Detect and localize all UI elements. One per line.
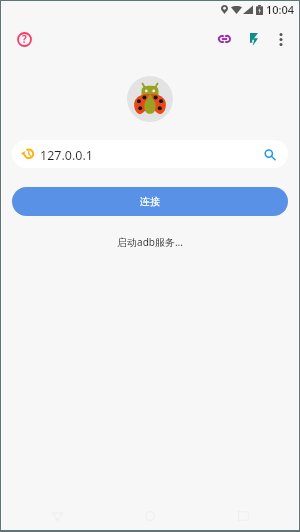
staticText: 启动adb服务... <box>2 235 298 249</box>
staticText: ? <box>22 32 27 46</box>
button[interactable]: 127.0.0.1 <box>12 140 288 168</box>
staticText: 连接 <box>140 195 160 208</box>
button[interactable]: 连接 <box>12 187 288 216</box>
staticText: 10:04 <box>266 2 295 17</box>
button[interactable]: Link <box>209 24 239 54</box>
button[interactable]: More options <box>268 24 294 54</box>
button[interactable]: Flash <box>239 24 268 54</box>
button[interactable]: Help <box>9 24 39 54</box>
button[interactable]: Search <box>263 148 277 162</box>
staticText: 127.0.0.1 <box>40 147 93 164</box>
